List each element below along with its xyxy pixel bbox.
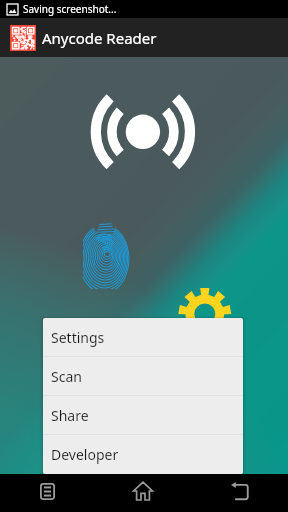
staticText: Saving screenshot... bbox=[23, 2, 117, 16]
button[interactable]: Settings bbox=[43, 318, 243, 356]
staticText: Developer bbox=[51, 445, 119, 464]
staticText: Anycode Reader bbox=[42, 28, 157, 48]
button[interactable]: Share bbox=[43, 396, 243, 434]
staticText: Settings bbox=[51, 328, 105, 347]
button[interactable]: Home bbox=[125, 472, 161, 510]
staticText: Share bbox=[51, 406, 89, 425]
button[interactable]: Developer bbox=[43, 435, 243, 473]
staticText: Scan bbox=[51, 367, 82, 386]
button[interactable]: Back bbox=[222, 472, 258, 510]
button[interactable]: Scan bbox=[43, 357, 243, 395]
other: App icon bbox=[10, 25, 36, 51]
button[interactable]: Recents bbox=[29, 472, 65, 510]
